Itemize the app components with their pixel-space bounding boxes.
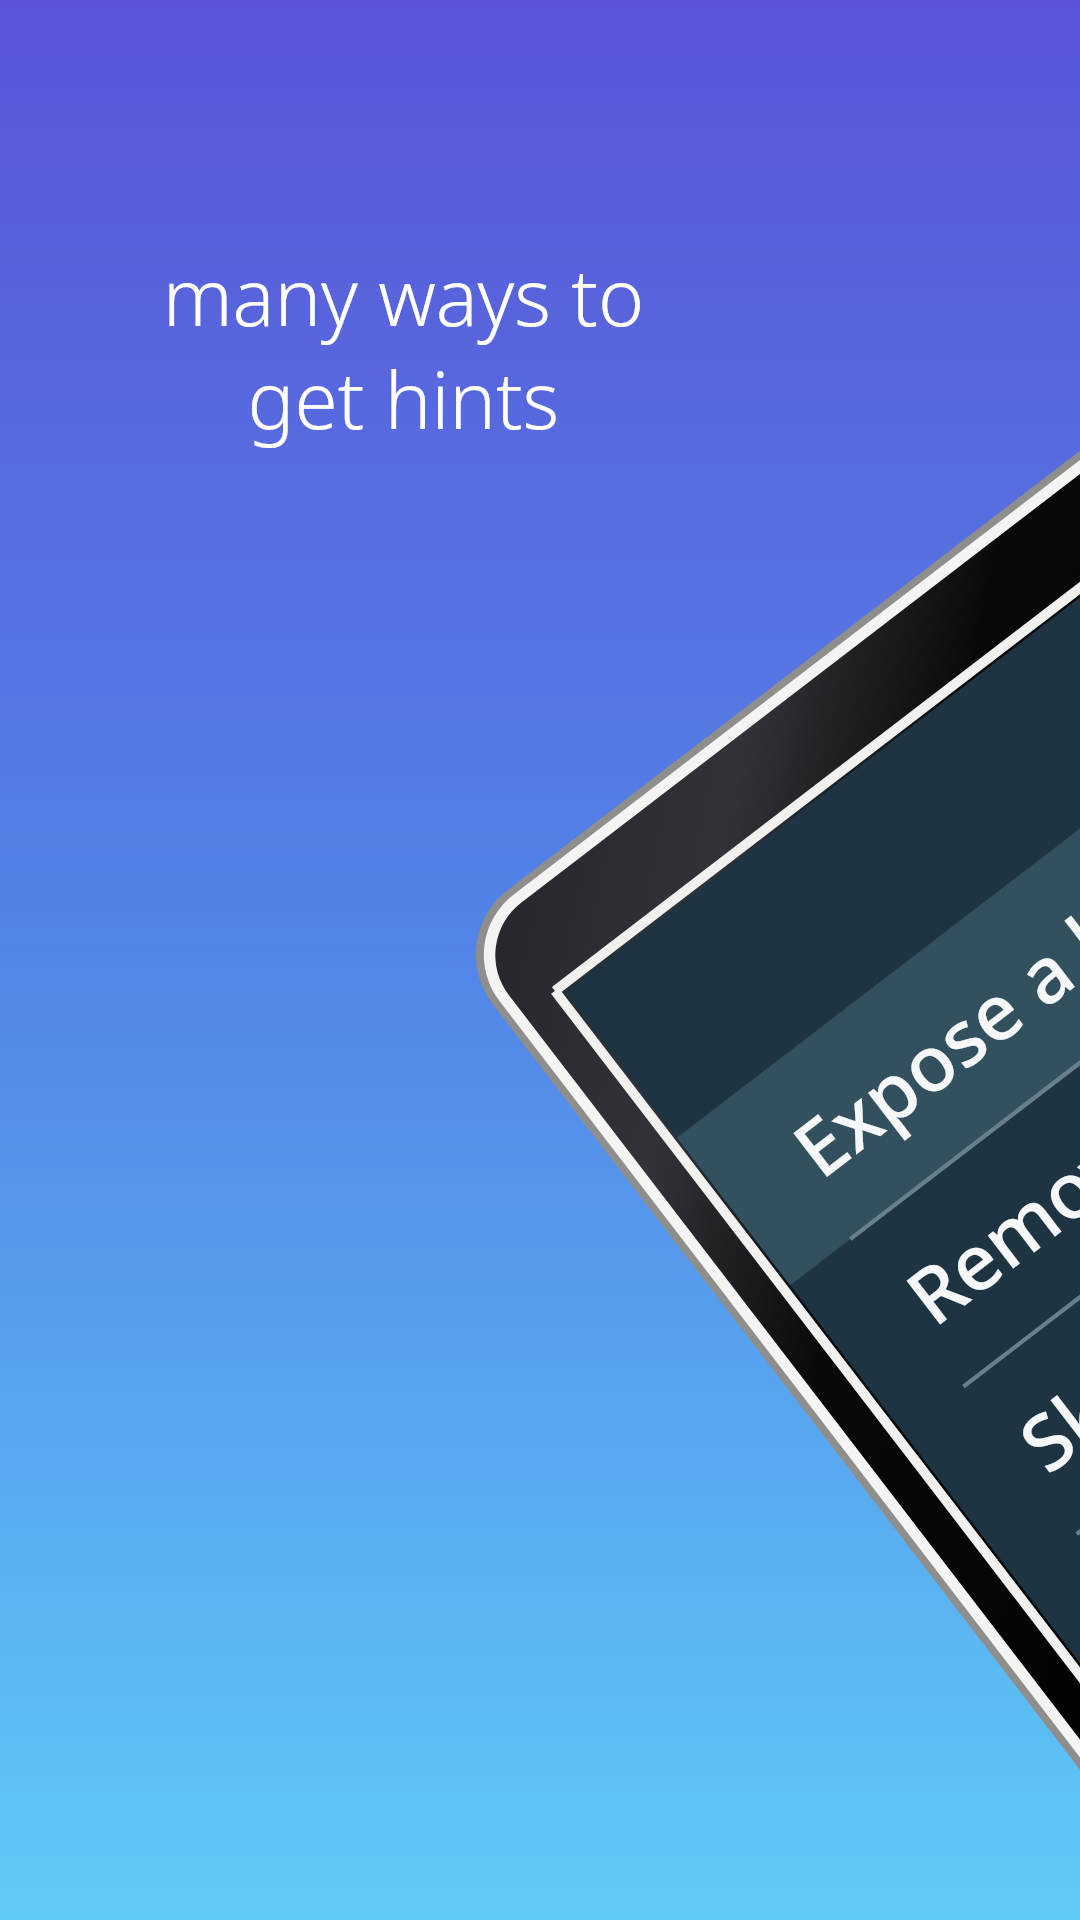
button[interactable]: Remove letters (475, 806, 1079, 1026)
button[interactable]: Home (356, 1353, 593, 1564)
button[interactable]: Skip the level (410, 950, 1036, 1170)
button[interactable]: Expose a letter (648, 662, 1080, 882)
